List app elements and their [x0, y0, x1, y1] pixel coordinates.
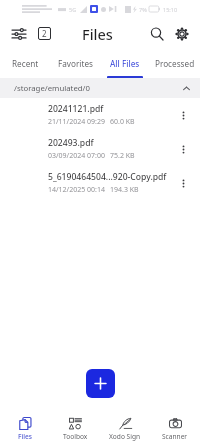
- staticText: Toolbox: [63, 432, 88, 441]
- button[interactable]: Add file: [86, 369, 115, 398]
- button[interactable]: Favorites: [50, 49, 100, 78]
- staticText: Recent: [12, 58, 39, 69]
- staticText: Files: [82, 24, 113, 44]
- staticText: Scanner: [162, 432, 188, 441]
- button[interactable]: Scanner: [150, 413, 200, 445]
- staticText: 03/09/2024 07:00: [48, 151, 105, 161]
- button[interactable]: Toolbox: [50, 413, 100, 445]
- staticText: 20241121.pdf: [48, 103, 104, 115]
- button[interactable]: 202493.pdf: [0, 132, 200, 166]
- staticText: Xodo Sign: [109, 432, 141, 441]
- staticText: All Files: [110, 58, 140, 69]
- staticText: Favorites: [58, 58, 93, 69]
- staticText: 202493.pdf: [48, 137, 94, 149]
- button[interactable]: More options for 20241121.pdf: [172, 104, 194, 126]
- button[interactable]: Processed: [150, 49, 200, 78]
- button[interactable]: Xodo Sign: [100, 413, 150, 445]
- button[interactable]: 5_6190464504...920-Copy.pdf: [0, 166, 200, 200]
- staticText: 75.2 KB: [110, 151, 135, 161]
- staticText: Files: [18, 432, 33, 441]
- staticText: Processed: [155, 58, 195, 69]
- button[interactable]: Sort and filter: [8, 23, 30, 45]
- button[interactable]: Search: [145, 22, 169, 46]
- staticText: 194.3 KB: [110, 185, 139, 195]
- staticText: 7%: [139, 6, 147, 13]
- staticText: 60.0 KB: [110, 117, 135, 127]
- button[interactable]: 20241121.pdf: [0, 98, 200, 132]
- staticText: 14/12/2025 00:14: [48, 185, 105, 195]
- staticText: 5G: [69, 6, 77, 13]
- staticText: 15:10: [163, 6, 178, 13]
- button[interactable]: All Files: [100, 49, 150, 78]
- button[interactable]: Recent: [0, 49, 50, 78]
- button[interactable]: Selected count 2: [38, 27, 51, 40]
- button[interactable]: Files: [0, 413, 50, 445]
- button[interactable]: Settings: [170, 22, 194, 46]
- staticText: 21/11/2024 09:29: [48, 117, 105, 127]
- staticText: 2: [42, 28, 47, 39]
- button[interactable]: More options for 202493.pdf: [172, 138, 194, 160]
- staticText: 5_6190464504...920-Copy.pdf: [48, 171, 167, 183]
- staticText: /storage/emulated/0: [14, 83, 90, 94]
- button[interactable]: More options for 5_6190464504...920-Copy…: [172, 172, 194, 194]
- button[interactable]: /storage/emulated/0: [0, 78, 200, 98]
